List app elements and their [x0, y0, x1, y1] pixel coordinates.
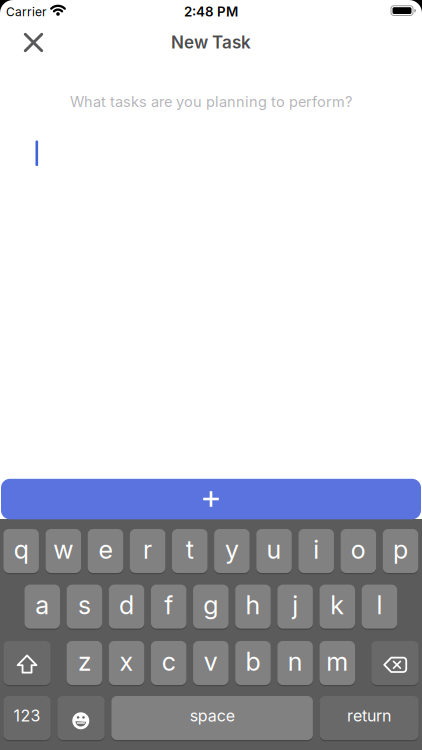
staticText: space: [190, 706, 235, 725]
staticText: q: [14, 534, 29, 565]
staticText: New Task: [171, 32, 251, 53]
staticText: m: [326, 646, 348, 677]
staticText: u: [266, 534, 281, 565]
staticText: k: [330, 590, 344, 620]
staticText: What tasks are you planning to perform?: [70, 93, 352, 111]
staticText: e: [98, 534, 112, 565]
staticText: Carrier: [6, 4, 47, 19]
staticText: 123: [13, 706, 40, 725]
staticText: l: [376, 590, 382, 620]
staticText: return: [347, 706, 391, 725]
staticText: d: [119, 590, 134, 620]
staticText: h: [245, 590, 260, 620]
staticText: x: [119, 646, 133, 677]
staticText: z: [78, 646, 91, 677]
staticText: n: [288, 646, 303, 677]
staticText: p: [393, 534, 408, 565]
staticText: f: [164, 590, 173, 620]
staticText: a: [35, 590, 49, 620]
staticText: g: [203, 590, 218, 620]
staticText: o: [351, 534, 366, 565]
staticText: v: [204, 646, 218, 677]
staticText: t: [186, 534, 194, 565]
staticText: s: [78, 590, 91, 620]
staticText: r: [143, 534, 152, 565]
staticText: j: [292, 590, 298, 620]
staticText: 2:48 PM: [184, 3, 238, 20]
staticText: i: [313, 534, 319, 565]
staticText: b: [245, 646, 260, 677]
staticText: y: [225, 534, 239, 565]
staticText: c: [162, 646, 176, 677]
staticText: w: [53, 534, 73, 565]
